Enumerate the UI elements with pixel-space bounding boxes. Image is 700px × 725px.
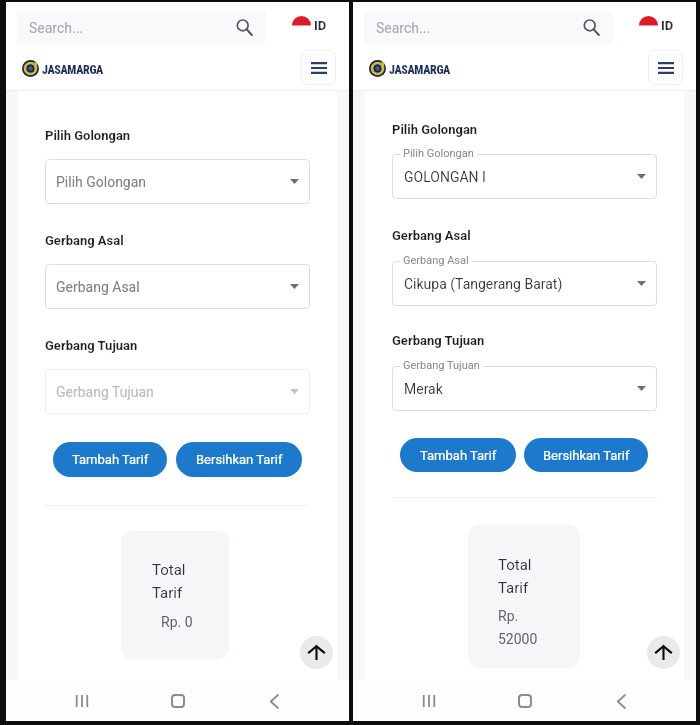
staticText: Pilih Golongan: [392, 122, 478, 137]
button[interactable]: Home: [505, 681, 545, 721]
staticText: Gerbang Tujuan: [403, 359, 480, 372]
button[interactable]: Menu: [301, 50, 336, 85]
staticText: Search...: [376, 20, 431, 36]
button[interactable]: Scroll to top: [300, 636, 333, 669]
staticText: Gerbang Asal: [56, 279, 140, 295]
button[interactable]: Tambah Tarif: [53, 442, 167, 477]
staticText: Search...: [29, 20, 84, 36]
button[interactable]: Gerbang Asal: [45, 264, 310, 309]
staticText: Tambah Tarif: [72, 452, 149, 467]
staticText: Pilih Golongan: [403, 147, 474, 160]
staticText: Rp. 0: [161, 614, 193, 630]
staticText: Gerbang Tujuan: [392, 333, 485, 348]
staticText: Gerbang Asal: [392, 228, 471, 243]
staticText: Pilih Golongan: [56, 174, 147, 190]
button[interactable]: Back: [601, 681, 641, 721]
staticText: Merak: [404, 381, 443, 397]
button[interactable]: Home: [158, 681, 198, 721]
button[interactable]: Bersihkan Tarif: [524, 438, 648, 472]
button[interactable]: Tambah Tarif: [400, 438, 516, 472]
staticText: Gerbang Asal: [45, 233, 124, 248]
staticText: Bersihkan Tarif: [196, 452, 283, 467]
staticText: JASAMARGA: [42, 63, 103, 77]
button[interactable]: Pilih Golongan: [45, 159, 310, 204]
button[interactable]: Gerbang Tujuan: [45, 369, 310, 414]
staticText: Cikupa (Tangerang Barat): [404, 276, 563, 292]
button[interactable]: Recents: [62, 681, 102, 721]
staticText: JASAMARGA: [389, 63, 450, 77]
staticText: GOLONGAN I: [404, 169, 486, 185]
button[interactable]: ID: [639, 16, 674, 35]
button[interactable]: Menu: [648, 50, 683, 85]
button[interactable]: Scroll to top: [647, 636, 680, 669]
button[interactable]: GOLONGAN I: [392, 154, 657, 199]
button[interactable]: Search...: [17, 12, 266, 43]
button[interactable]: ID: [292, 16, 327, 35]
button[interactable]: Recents: [409, 681, 449, 721]
staticText: ID: [314, 18, 327, 33]
staticText: Total Tarif: [152, 561, 186, 602]
staticText: Tambah Tarif: [420, 448, 497, 463]
staticText: Gerbang Tujuan: [45, 338, 138, 353]
button[interactable]: Bersihkan Tarif: [176, 442, 302, 477]
staticText: Gerbang Tujuan: [56, 384, 154, 400]
button[interactable]: Search...: [364, 12, 613, 43]
button[interactable]: Cikupa (Tangerang Barat): [392, 261, 657, 306]
staticText: Bersihkan Tarif: [543, 448, 630, 463]
button[interactable]: Merak: [392, 366, 657, 411]
staticText: Rp. 52000: [498, 608, 538, 648]
staticText: Total Tarif: [498, 556, 532, 597]
button[interactable]: Back: [254, 681, 294, 721]
staticText: ID: [661, 18, 674, 33]
staticText: Pilih Golongan: [45, 128, 131, 143]
staticText: Gerbang Asal: [403, 254, 469, 267]
